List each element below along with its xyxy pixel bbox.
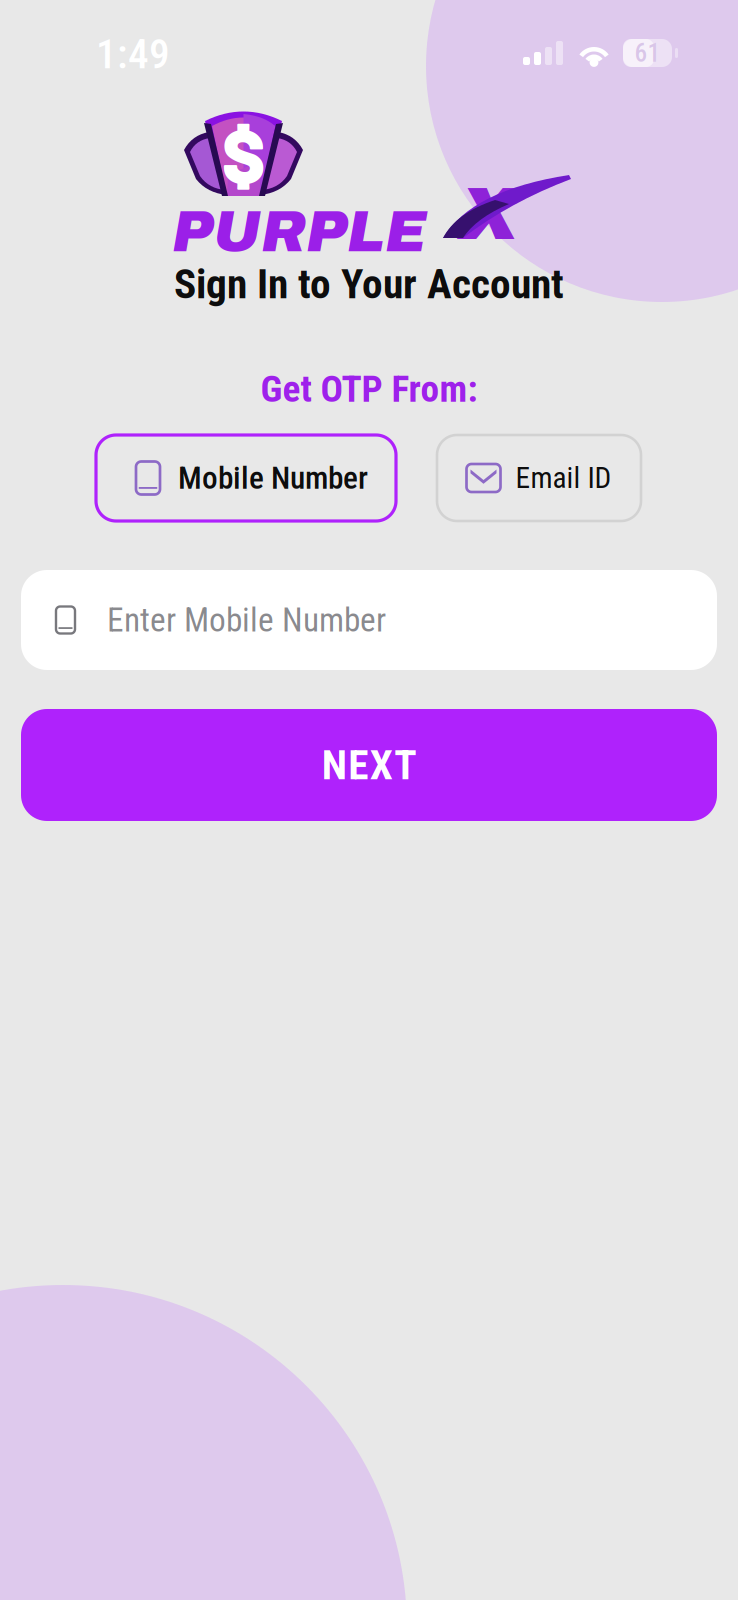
staticText: $ [222,109,265,199]
button[interactable]: Enter Mobile Number [21,570,717,670]
staticText: Mobile Number [178,460,368,496]
staticText: Get OTP From: [260,367,477,411]
staticText: 1:49 [96,30,170,78]
button[interactable]: Email ID [437,435,641,521]
button[interactable]: NEXT [21,709,717,821]
staticText: Enter Mobile Number [107,600,386,640]
staticText: PURPLE [172,201,426,263]
staticText: Sign In to Your Account [174,260,564,308]
staticText: X [460,173,518,255]
staticText: NEXT [322,741,416,789]
staticText: 61 [634,38,660,68]
button[interactable]: Mobile Number [96,435,396,521]
staticText: Email ID [515,461,611,495]
